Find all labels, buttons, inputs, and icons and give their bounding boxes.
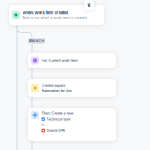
staticText: Creator equals	[41, 83, 65, 88]
staticText: Oracle EPM	[46, 128, 65, 133]
staticText: When: Work item created	[22, 10, 67, 15]
staticText: in	[41, 123, 44, 127]
staticText: Technical task	[46, 117, 70, 121]
staticText: Automation for Jira	[41, 88, 71, 93]
button[interactable]: Then: Create a new	[28, 108, 116, 141]
staticText: BRANCH	[28, 39, 44, 43]
staticText: Then: Create a new	[41, 111, 73, 115]
button[interactable]: Delete step	[84, 0, 94, 10]
button[interactable]: Creator equals	[28, 79, 116, 97]
button[interactable]: When: Work item created	[9, 5, 104, 25]
staticText: For: Current work item	[41, 58, 77, 63]
staticText: Rule is run when a work item is created.	[22, 16, 87, 20]
button[interactable]: For: Current work item	[28, 53, 116, 68]
